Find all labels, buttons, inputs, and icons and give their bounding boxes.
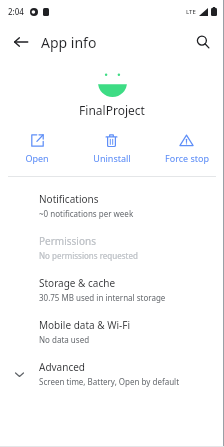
button[interactable]: Advanced [0,353,224,394]
staticText: Force stop [165,152,209,164]
staticText: Advanced [39,360,85,374]
button[interactable]: Force stop [149,131,224,166]
staticText: ~0 notifications per week [39,208,134,219]
button[interactable]: Open [0,131,74,166]
staticText: Notifications [39,192,99,206]
staticText: Uninstall [93,152,131,164]
button[interactable]: Back [5,26,37,58]
staticText: Screen time, Battery, Open by default [39,376,180,387]
staticText: Mobile data & Wi-Fi [39,318,131,332]
staticText: No permissions requested [39,250,138,261]
staticText: App info [41,33,97,52]
staticText: 2:04 [8,6,24,17]
button[interactable]: Storage & cache [0,269,224,311]
button[interactable]: Uninstall [74,131,149,166]
button[interactable]: Mobile data & Wi-Fi [0,311,224,353]
button[interactable]: Search [188,27,218,57]
button[interactable]: Notifications [0,185,224,227]
staticText: Open [25,152,49,164]
staticText: FinalProject [0,102,224,118]
staticText: Permissions [39,234,96,248]
staticText: 30.75 MB used in internal storage [39,292,166,303]
button[interactable]: Permissions [0,227,224,269]
staticText: Storage & cache [39,276,116,290]
staticText: LTE [186,8,196,16]
staticText: No data used [39,334,90,345]
